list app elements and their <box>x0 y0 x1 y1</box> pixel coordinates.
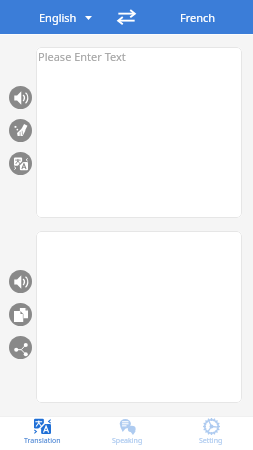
button[interactable]: Setting <box>169 417 253 450</box>
button[interactable]: French <box>171 4 225 31</box>
button[interactable]: Speaking <box>85 417 169 450</box>
staticText: Translation <box>24 436 61 446</box>
button[interactable]: Speak source text <box>9 86 32 109</box>
button[interactable]: Share translation <box>9 336 32 359</box>
button[interactable]: Swap languages <box>109 0 143 34</box>
button[interactable] <box>36 231 242 403</box>
button[interactable]: Clear text <box>9 119 32 142</box>
staticText: English <box>39 10 77 25</box>
button[interactable]: Translate <box>9 152 32 175</box>
button[interactable]: English <box>30 4 101 31</box>
button[interactable]: Speak translation <box>9 270 32 293</box>
staticText: Speaking <box>112 436 143 446</box>
button[interactable]: Please Enter Text <box>36 47 242 218</box>
staticText: French <box>180 10 216 25</box>
button[interactable]: Translation <box>0 417 85 450</box>
staticText: Please Enter Text <box>38 49 126 64</box>
staticText: Setting <box>199 436 223 446</box>
button[interactable]: Copy translation <box>9 303 32 326</box>
